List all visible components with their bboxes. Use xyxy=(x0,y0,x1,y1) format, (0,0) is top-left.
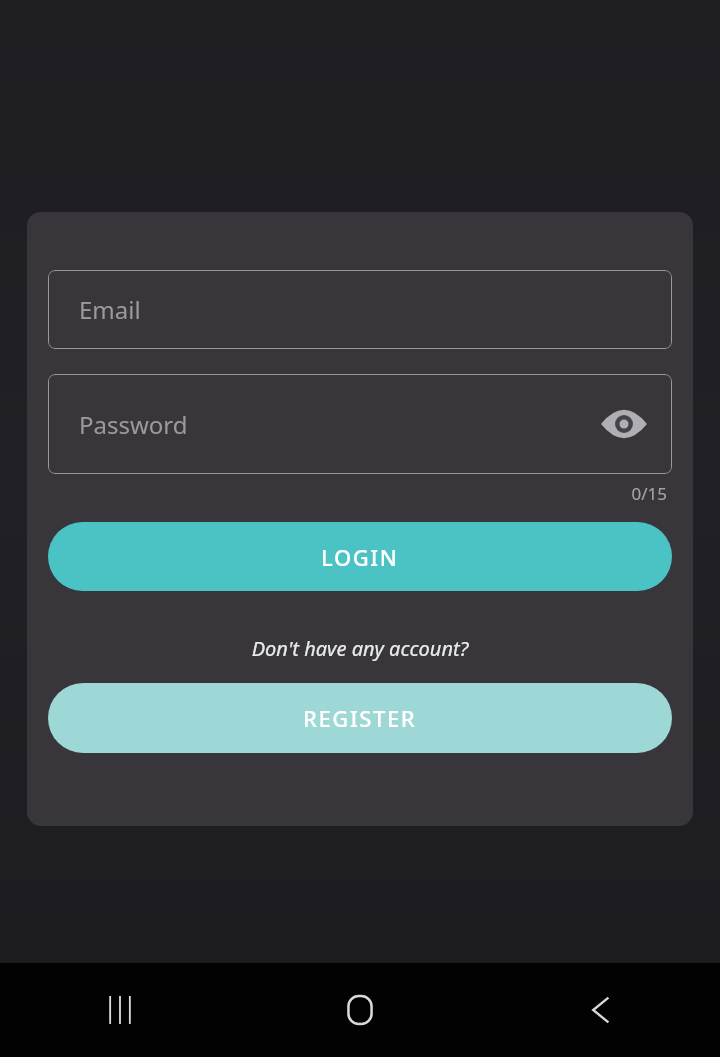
button[interactable]: Home xyxy=(240,963,480,1057)
staticText: REGISTER xyxy=(303,703,417,733)
button[interactable]: Show password xyxy=(598,398,650,450)
button[interactable]: Recent apps xyxy=(0,963,240,1057)
staticText: Password xyxy=(79,408,188,441)
button[interactable]: Back xyxy=(480,963,720,1057)
button[interactable]: Email xyxy=(48,270,672,349)
staticText: LOGIN xyxy=(321,542,399,572)
staticText: Don't have any account? xyxy=(27,635,693,662)
staticText: 0/15 xyxy=(27,482,667,505)
staticText: Email xyxy=(79,293,141,326)
button[interactable]: Password xyxy=(48,374,672,474)
button[interactable]: LOGIN xyxy=(48,522,672,591)
button[interactable]: REGISTER xyxy=(48,683,672,753)
